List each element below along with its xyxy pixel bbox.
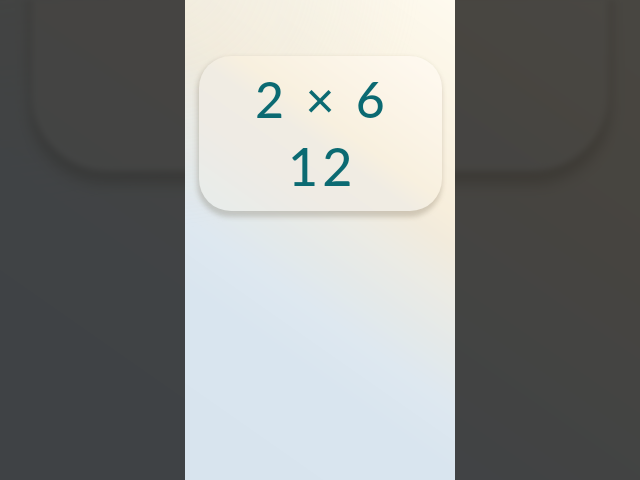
staticText: 12 (288, 135, 357, 197)
button[interactable]: 2 × 6 (199, 56, 442, 211)
staticText: 2 × 6 (255, 69, 390, 129)
button[interactable]: 2 × 6 (32, 0, 608, 171)
staticText: 12 (244, 0, 406, 139)
